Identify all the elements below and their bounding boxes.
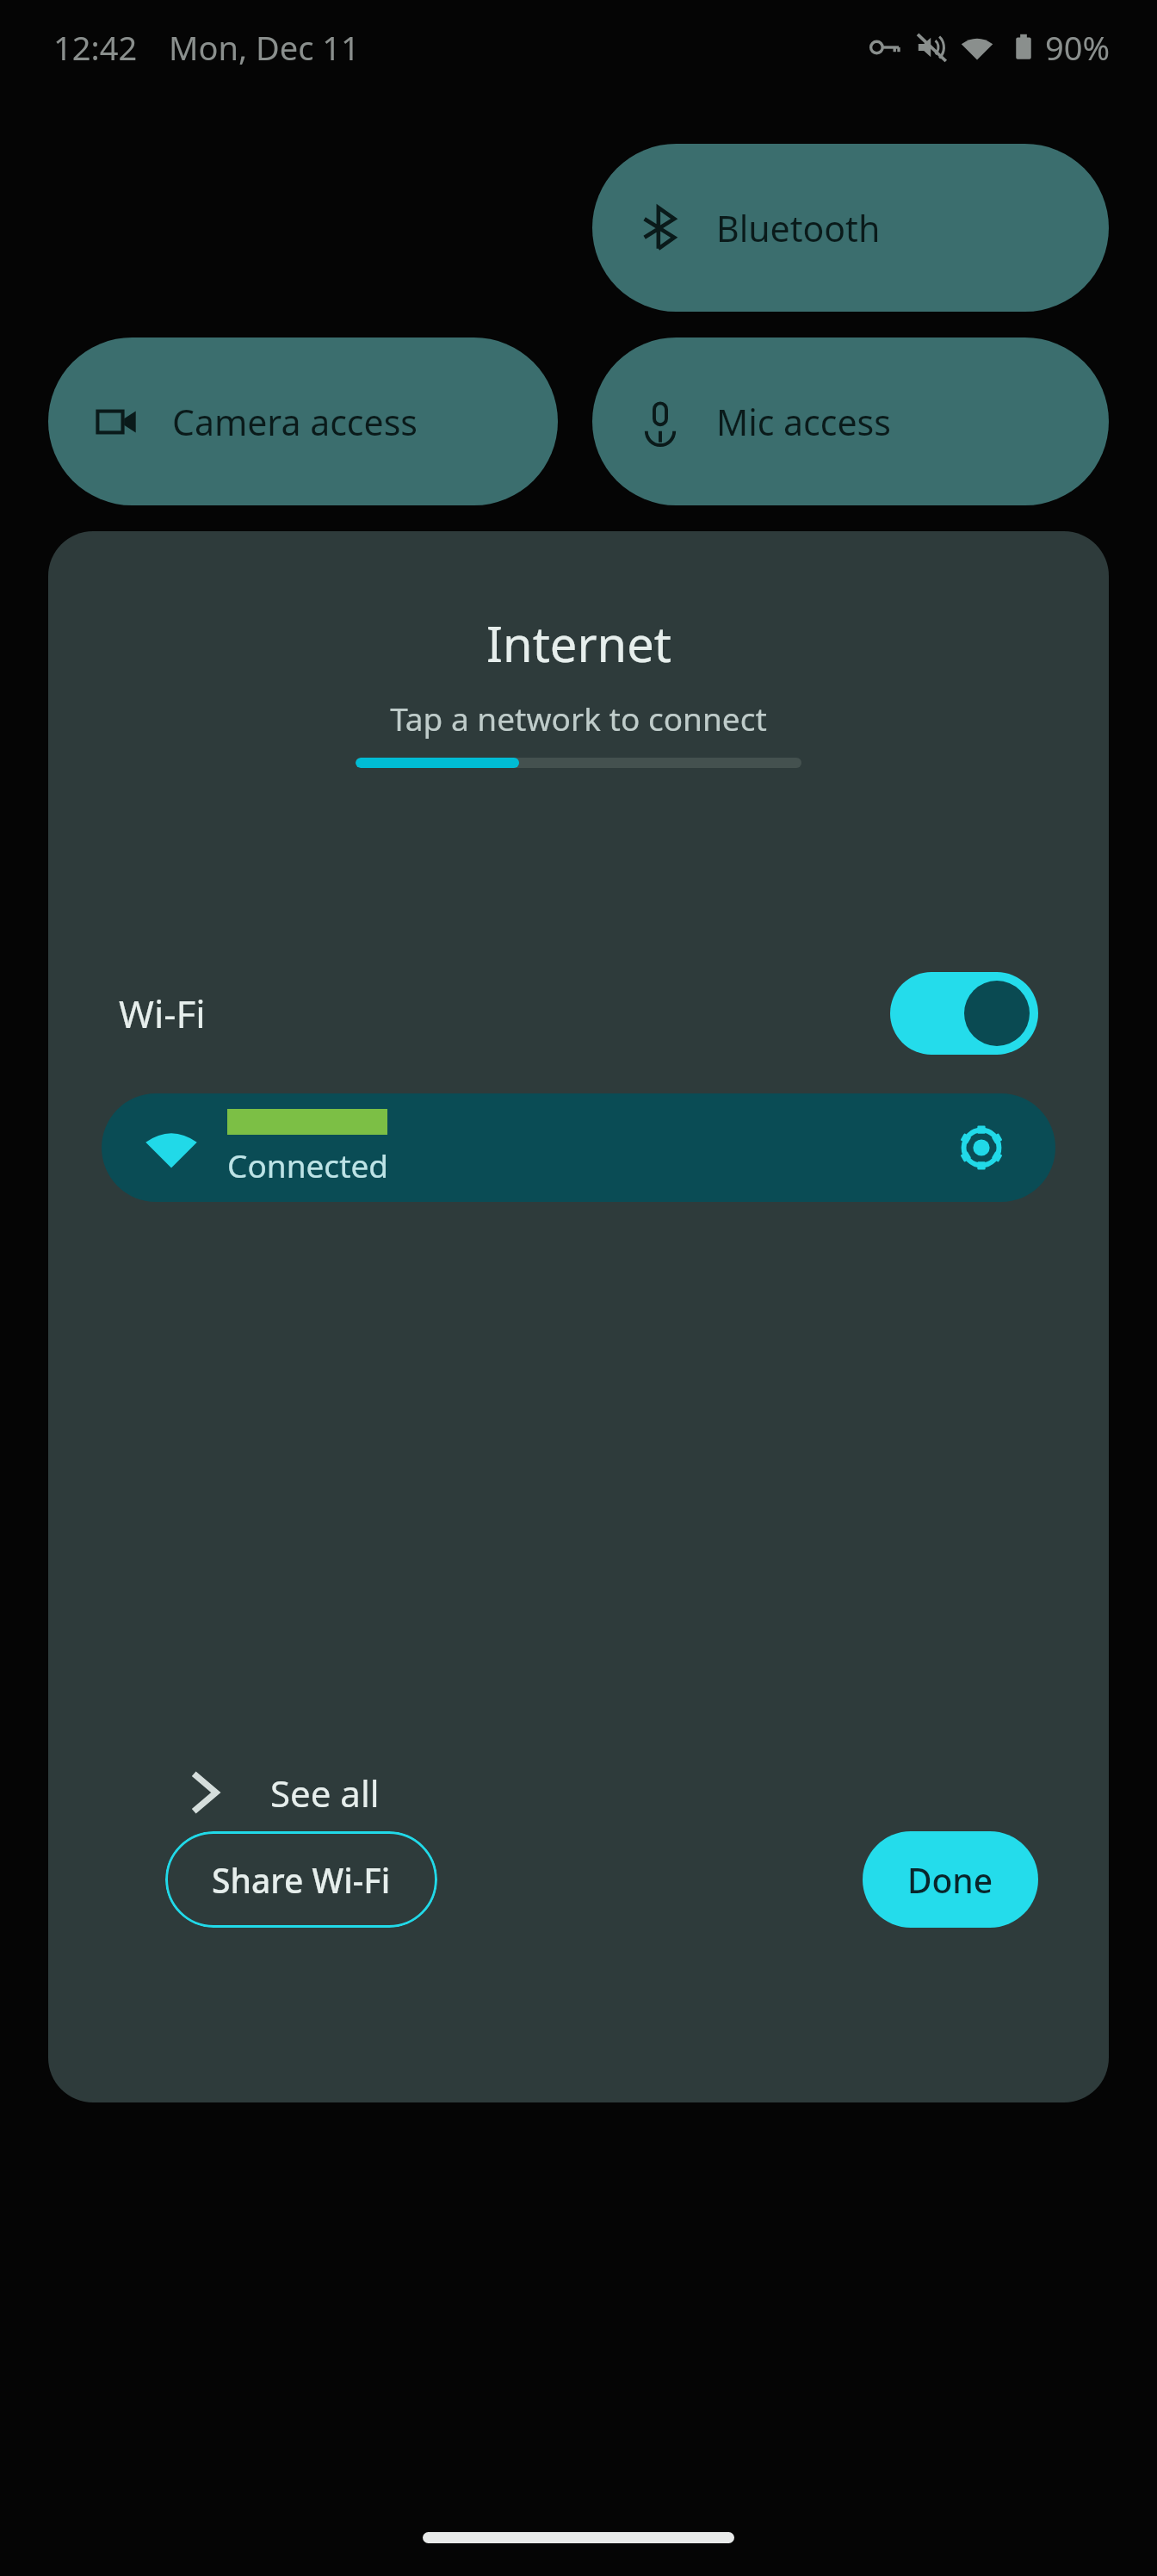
staticText: 90%: [1045, 25, 1111, 70]
button[interactable]: Network settings: [945, 1112, 1018, 1184]
staticText: Mon, Dec 11: [169, 25, 360, 70]
staticText: See all: [270, 1768, 380, 1817]
staticText: Tap a network to connect: [390, 697, 767, 740]
staticText: Done: [907, 1857, 993, 1903]
button[interactable]: Done: [863, 1831, 1038, 1928]
staticText: Mic access: [716, 398, 891, 446]
button[interactable]: Share Wi-Fi: [165, 1831, 437, 1928]
staticText: Wi-Fi: [119, 988, 206, 1039]
staticText: Internet: [486, 610, 671, 676]
staticText: Bluetooth: [716, 204, 881, 252]
button[interactable]: See all: [48, 1737, 1109, 1848]
staticText: Camera access: [172, 398, 418, 446]
staticText: Connected: [227, 1143, 389, 1186]
button[interactable]: Camera access: [48, 337, 558, 505]
button[interactable]: Connected: [102, 1093, 1055, 1202]
button[interactable]: Wi-Fi: [48, 962, 1109, 1065]
staticText: 12:42: [53, 25, 138, 70]
button[interactable]: Mic access: [592, 337, 1109, 505]
button[interactable]: Bluetooth: [592, 144, 1109, 312]
staticText: Share Wi-Fi: [212, 1857, 391, 1903]
